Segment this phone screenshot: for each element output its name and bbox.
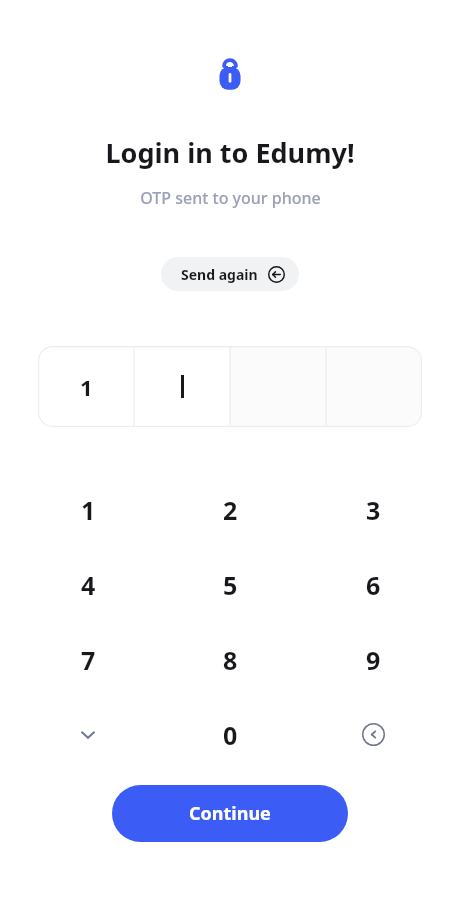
button[interactable]: 1 bbox=[38, 346, 134, 427]
button[interactable]: 5 bbox=[175, 562, 285, 607]
staticText: 4 bbox=[81, 568, 96, 602]
button[interactable]: 1 bbox=[33, 487, 143, 532]
staticText: 0 bbox=[223, 718, 238, 752]
staticText: 1 bbox=[81, 493, 96, 527]
staticText: 6 bbox=[366, 568, 381, 602]
button[interactable]: 2 bbox=[175, 487, 285, 532]
button[interactable] bbox=[134, 346, 230, 427]
button[interactable]: 3 bbox=[318, 487, 428, 532]
staticText: 8 bbox=[223, 643, 238, 677]
staticText: OTP sent to your phone bbox=[140, 187, 321, 209]
staticText: 1 bbox=[80, 372, 93, 402]
staticText: 2 bbox=[223, 493, 238, 527]
button[interactable]: 8 bbox=[175, 637, 285, 682]
staticText: 9 bbox=[366, 643, 381, 677]
button[interactable]: 4 bbox=[33, 562, 143, 607]
button[interactable]: 7 bbox=[33, 637, 143, 682]
button[interactable]: 0 bbox=[175, 712, 285, 757]
button[interactable]: Hide keypad bbox=[33, 712, 143, 757]
staticText: 7 bbox=[81, 643, 96, 677]
button[interactable]: 6 bbox=[318, 562, 428, 607]
staticText: Send again bbox=[181, 265, 258, 284]
button[interactable]: Send again bbox=[161, 257, 299, 291]
staticText: 5 bbox=[223, 568, 238, 602]
staticText: Login in to Edumy! bbox=[105, 134, 355, 171]
staticText: 3 bbox=[366, 493, 381, 527]
button[interactable]: Continue bbox=[112, 785, 348, 842]
staticText: Continue bbox=[189, 801, 271, 826]
button[interactable]: Backspace bbox=[318, 712, 428, 757]
other: Secure lock bbox=[213, 54, 247, 92]
button[interactable]: 9 bbox=[318, 637, 428, 682]
